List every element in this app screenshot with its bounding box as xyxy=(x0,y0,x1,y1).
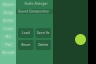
button[interactable]: Loops xyxy=(2,26,15,31)
staticText: Pad xyxy=(5,43,11,46)
staticText: Synths xyxy=(3,19,14,22)
button[interactable]: Delete xyxy=(35,40,51,50)
staticText: Sound Composition xyxy=(18,10,49,13)
staticText: Loops xyxy=(3,27,13,30)
button[interactable]: Load xyxy=(18,28,33,38)
button[interactable]: Save As xyxy=(35,28,51,38)
staticText: Load xyxy=(22,31,30,35)
button[interactable]: Synths xyxy=(2,18,15,23)
staticText: Delete xyxy=(38,43,48,47)
staticText: Audio Arranger xyxy=(24,2,47,5)
button[interactable]: Pad xyxy=(2,42,15,47)
button[interactable]: Mix xyxy=(2,34,15,39)
staticText: Albums xyxy=(2,3,14,6)
button[interactable]: Records xyxy=(2,50,15,55)
button[interactable]: Albums xyxy=(2,2,15,7)
staticText: Records xyxy=(2,51,15,54)
button[interactable]: Songs xyxy=(2,10,15,15)
staticText: Reset xyxy=(21,43,30,47)
button[interactable]: Reset xyxy=(18,40,33,50)
staticText: Save As xyxy=(37,31,50,35)
staticText: Mix xyxy=(5,35,11,38)
staticText: Songs xyxy=(3,11,13,14)
